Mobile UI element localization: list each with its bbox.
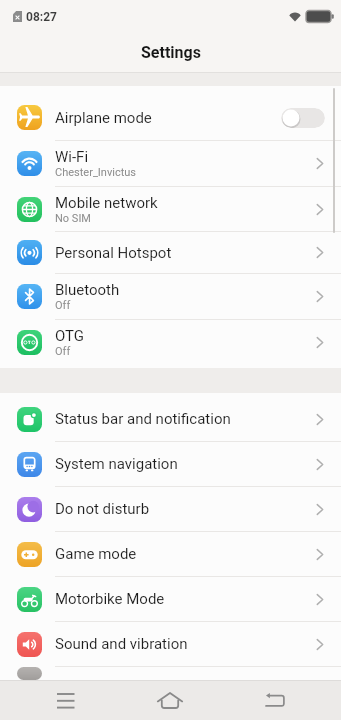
staticText: Do not disturb xyxy=(55,500,150,518)
button[interactable]: Mobile network xyxy=(0,187,341,231)
staticText: 08:27 xyxy=(26,10,57,24)
button[interactable] xyxy=(281,108,325,128)
staticText: OTG xyxy=(55,327,85,345)
staticText: Airplane mode xyxy=(55,109,152,127)
button[interactable] xyxy=(146,680,194,720)
button[interactable]: Wi-Fi xyxy=(0,141,341,186)
staticText: Off xyxy=(55,345,71,358)
button[interactable]: Game mode xyxy=(0,532,341,576)
button[interactable]: Bluetooth xyxy=(0,274,341,319)
staticText: Chester_Invictus xyxy=(55,166,137,179)
staticText: Game mode xyxy=(55,545,137,563)
staticText: System navigation xyxy=(55,455,178,473)
button[interactable]: System navigation xyxy=(0,442,341,486)
staticText: Settings xyxy=(141,43,201,62)
button[interactable]: Do not disturb xyxy=(0,487,341,531)
button[interactable]: Sound and vibration xyxy=(0,622,341,666)
staticText: Sound and vibration xyxy=(55,635,188,653)
staticText: Wi-Fi xyxy=(55,148,89,166)
staticText: Status bar and notification xyxy=(55,410,231,428)
button[interactable]: Airplane mode xyxy=(0,95,341,140)
button[interactable] xyxy=(42,680,90,720)
button[interactable]: Motorbike Mode xyxy=(0,577,341,621)
staticText: Bluetooth xyxy=(55,281,120,299)
button[interactable]: Status bar and notification xyxy=(0,397,341,441)
staticText: Personal Hotspot xyxy=(55,244,172,262)
staticText: Mobile network xyxy=(55,194,158,212)
button[interactable]: OTG xyxy=(0,320,341,365)
button[interactable]: Personal Hotspot xyxy=(0,232,341,273)
button[interactable] xyxy=(250,680,298,720)
staticText: Off xyxy=(55,299,71,312)
staticText: No SIM xyxy=(55,212,91,225)
staticText: Motorbike Mode xyxy=(55,590,165,608)
